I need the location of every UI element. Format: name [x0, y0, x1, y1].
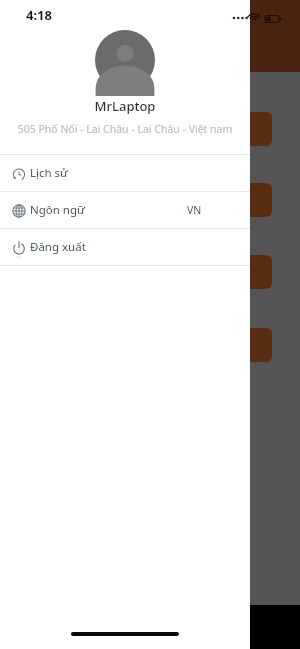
other: Language [12, 204, 26, 218]
other: History [12, 167, 26, 181]
button[interactable]: Language [0, 192, 250, 228]
staticText: Đăng xuất [30, 239, 86, 255]
button[interactable]: Log out [0, 229, 250, 265]
staticText: 4:18 [26, 6, 52, 24]
staticText: Lịch sử [30, 165, 68, 181]
other: Log out [12, 241, 26, 255]
staticText: MrLaptop [0, 97, 250, 115]
staticText: 505 Phố Nối - Lai Châu - Lai Châu - Việt… [6, 122, 244, 136]
staticText: VN [187, 203, 202, 217]
button[interactable]: History [0, 155, 250, 191]
staticText: Ngôn ngữ [30, 202, 85, 218]
